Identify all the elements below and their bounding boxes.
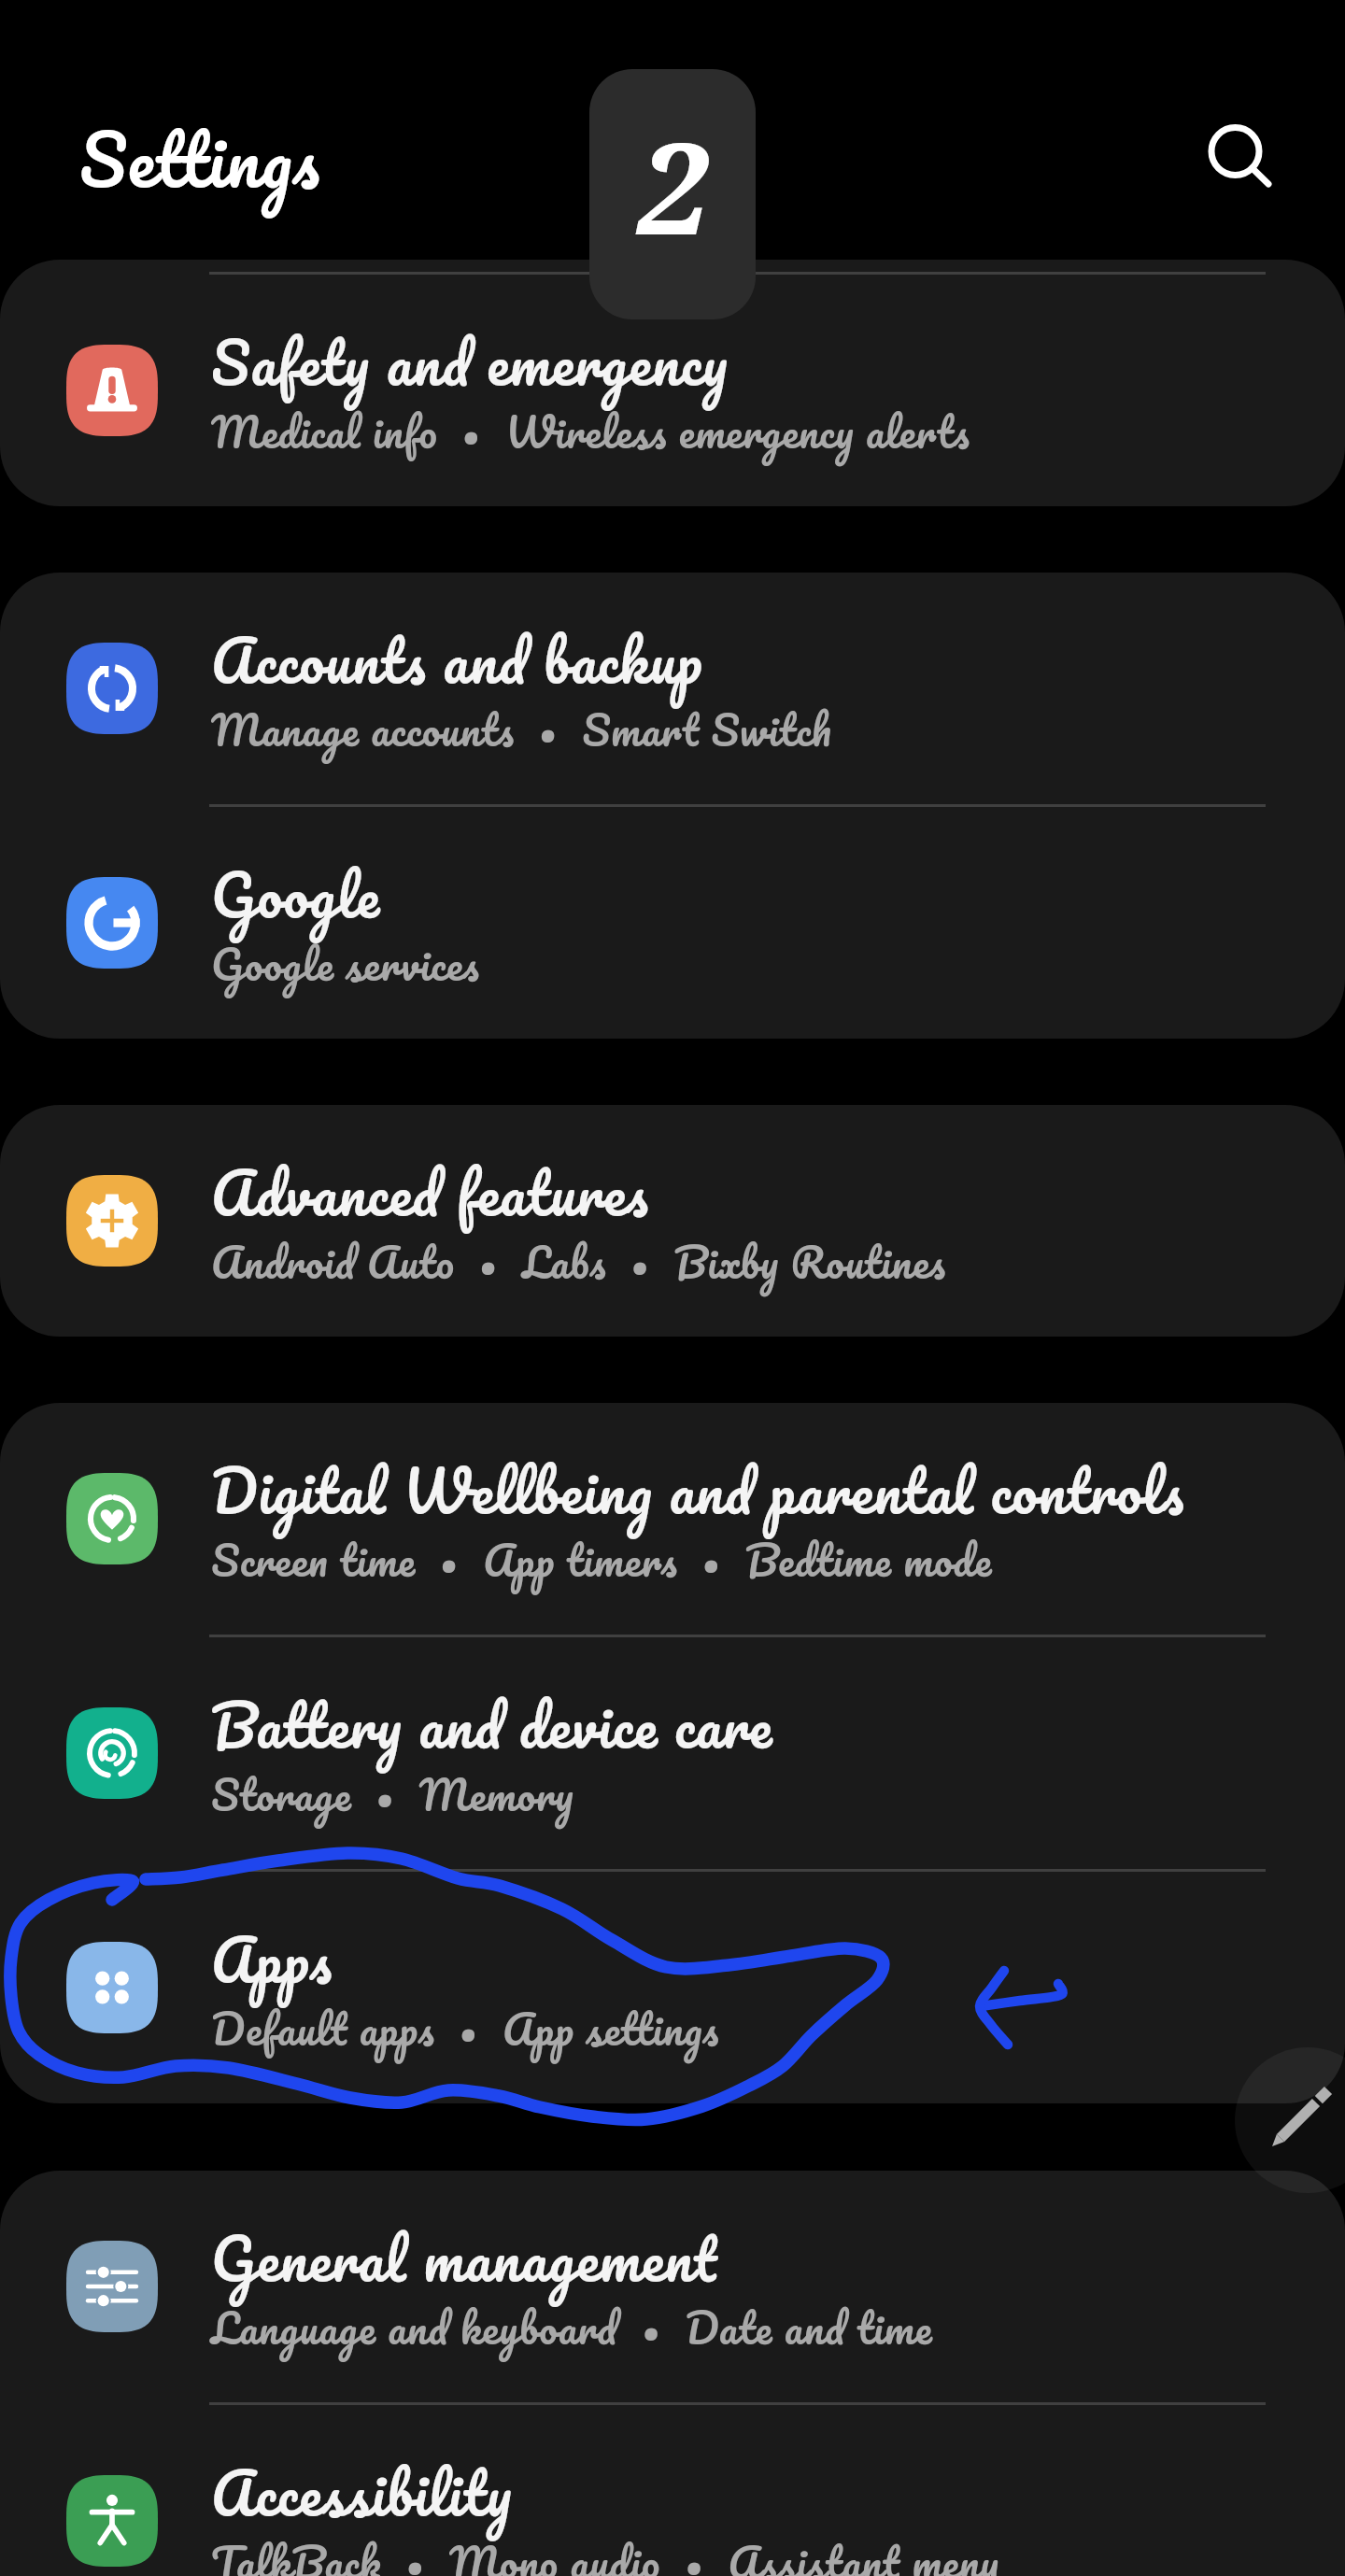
button[interactable]: Google [0, 807, 1345, 1039]
staticText: Screen time • App timers • Bedtime mode [211, 1524, 993, 1595]
button[interactable]: Advanced features [0, 1105, 1345, 1337]
button[interactable]: Accounts and backup [0, 573, 1345, 804]
staticText: Android Auto • Labs • Bixby Routines [211, 1226, 946, 1297]
staticText: Accessibility [211, 2444, 513, 2541]
button[interactable]: General management [0, 2171, 1345, 2402]
button[interactable]: Accessibility [0, 2405, 1345, 2576]
staticText: General management [211, 2210, 718, 2307]
staticText: Safety and emergency [211, 314, 729, 411]
button[interactable]: Battery and device care [0, 1637, 1345, 1869]
staticText: Medical info • Wireless emergency alerts [211, 396, 970, 467]
staticText: Settings [79, 100, 321, 218]
staticText: Google [211, 846, 381, 943]
button[interactable]: Search [1182, 99, 1287, 204]
staticText: 2 [637, 99, 709, 272]
button[interactable]: Digital Wellbeing and parental controls [0, 1403, 1345, 1635]
staticText: Default apps • App settings [211, 1993, 720, 2064]
staticText: Battery and device care [211, 1677, 773, 1774]
button[interactable]: Safety and emergency [0, 275, 1345, 506]
button[interactable]: Edit with S Pen [1235, 2047, 1345, 2193]
staticText: TalkBack • Mono audio • Assistant menu [211, 2526, 999, 2576]
staticText: Advanced features [211, 1144, 650, 1241]
staticText: Manage accounts • Smart Switch [211, 694, 832, 765]
staticText: Digital Wellbeing and parental controls [211, 1442, 1185, 1539]
staticText: Accounts and backup [211, 612, 703, 709]
staticText: Storage • Memory [211, 1759, 574, 1830]
button[interactable]: Apps [0, 1872, 1345, 2103]
staticText: Apps [211, 1911, 333, 2008]
staticText: Language and keyboard • Date and time [211, 2292, 933, 2363]
staticText: Google services [211, 928, 480, 999]
